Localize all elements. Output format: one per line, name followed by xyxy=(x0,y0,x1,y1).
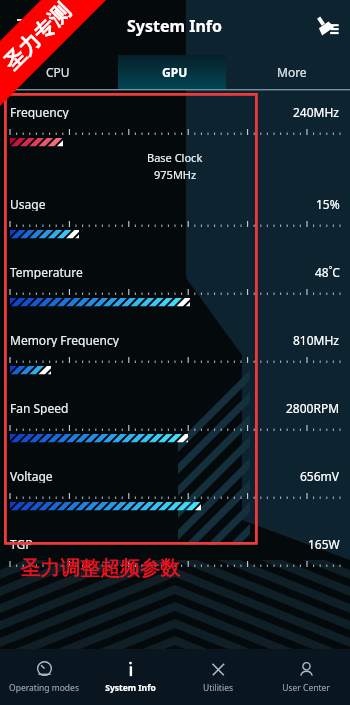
staticText: 2800RPM xyxy=(286,400,340,415)
staticText: Utilities xyxy=(203,682,233,694)
button[interactable]: Usage xyxy=(10,196,340,211)
staticText: Frequency xyxy=(10,104,69,119)
button[interactable]: Temperature xyxy=(10,264,340,279)
staticText: 48˚C xyxy=(315,264,340,279)
button[interactable]: Memory Frequency xyxy=(10,332,340,347)
staticText: CPU xyxy=(46,64,70,80)
button[interactable]: User Center xyxy=(262,649,350,705)
button[interactable]: System Info xyxy=(87,649,174,705)
staticText: Operating modes xyxy=(9,682,79,694)
staticText: GPU xyxy=(162,64,188,80)
staticText: Fan Speed xyxy=(10,400,69,415)
staticText: More xyxy=(277,64,307,80)
button[interactable]: Voltage xyxy=(10,468,340,483)
staticText: System Info xyxy=(127,15,223,37)
button[interactable]: Utilities xyxy=(174,649,262,705)
button[interactable]: TGP xyxy=(10,536,340,551)
button[interactable]: More xyxy=(233,55,350,89)
staticText: TGP xyxy=(10,536,33,551)
staticText: Temperature xyxy=(10,264,83,279)
staticText: Voltage xyxy=(10,468,53,483)
staticText: 240MHz xyxy=(293,104,340,119)
staticText: 15% xyxy=(316,196,340,211)
staticText: Memory Frequency xyxy=(10,332,119,347)
button[interactable]: Clean xyxy=(314,13,340,39)
staticText: 圣力专测 xyxy=(0,0,76,76)
staticText: Usage xyxy=(10,196,46,211)
staticText: User Center xyxy=(282,682,330,694)
button[interactable]: Menu xyxy=(10,11,40,41)
staticText: 656mV xyxy=(300,468,340,483)
button[interactable]: Fan Speed xyxy=(10,400,340,415)
button[interactable]: CPU xyxy=(0,55,116,89)
staticText: 圣力调整超频参数 xyxy=(20,556,180,581)
staticText: 975MHz xyxy=(154,167,197,182)
button[interactable]: GPU xyxy=(116,55,233,89)
staticText: 810MHz xyxy=(293,332,340,347)
staticText: 165W xyxy=(308,536,340,551)
button[interactable]: Operating modes xyxy=(0,649,87,705)
button[interactable]: Frequency xyxy=(10,104,340,119)
staticText: Base Clock xyxy=(147,150,203,165)
staticText: System Info xyxy=(105,682,156,694)
